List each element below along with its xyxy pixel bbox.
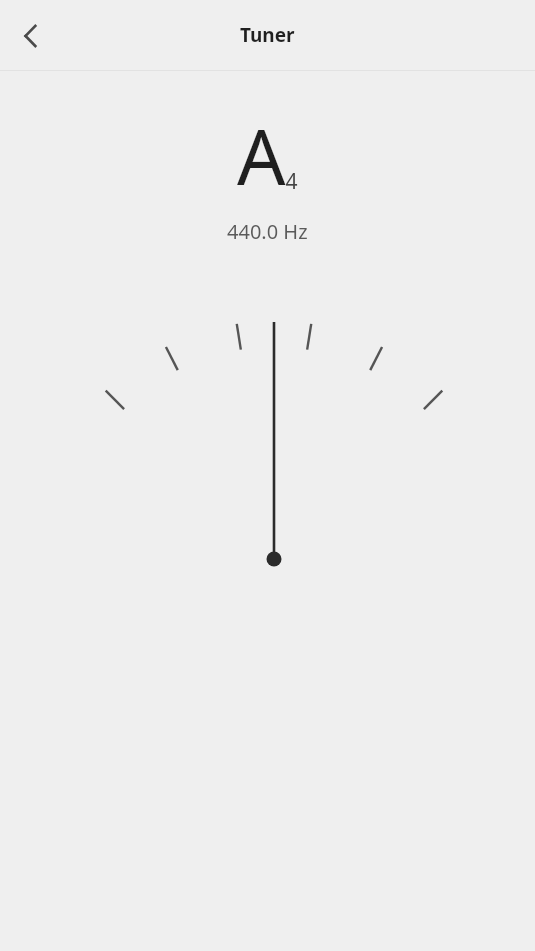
staticText: Tuner	[240, 22, 295, 48]
staticText: A4	[237, 104, 298, 208]
staticText: 440.0 Hz	[227, 218, 308, 245]
button[interactable]: Back	[8, 12, 56, 60]
